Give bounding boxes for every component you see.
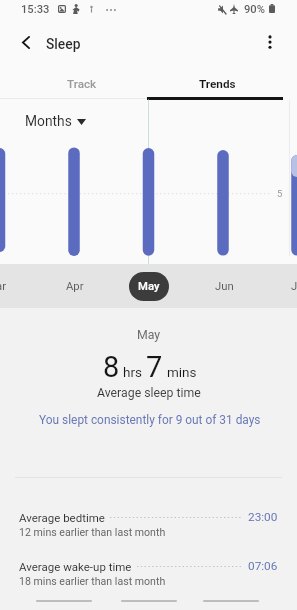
staticText: 7: [146, 350, 163, 384]
staticText: ar: [0, 280, 6, 293]
staticText: Average wake-up time: [19, 560, 132, 573]
staticText: Average sleep time: [97, 386, 201, 400]
staticText: mins: [167, 364, 197, 380]
staticText: 90%: [244, 3, 265, 16]
staticText: 07:06: [248, 559, 278, 573]
button[interactable]: Trends: [148, 63, 283, 96]
staticText: hrs: [123, 364, 142, 380]
staticText: Average bedtime: [19, 511, 105, 524]
staticText: You slept consistently for 9 out of 31 d…: [39, 413, 261, 427]
staticText: 23:00: [248, 510, 278, 524]
staticText: Apr: [66, 280, 84, 293]
button[interactable]: Months: [19, 109, 92, 133]
staticText: 12 mins earlier than last month: [19, 526, 166, 538]
button[interactable]: Navigate up: [4, 21, 48, 63]
staticText: Trends: [199, 77, 236, 91]
button[interactable]: Average wake-up time: [0, 559, 297, 587]
staticText: May: [137, 328, 161, 342]
button[interactable]: Average bedtime: [0, 510, 297, 538]
staticText: 15:33: [21, 3, 50, 16]
staticText: Track: [67, 77, 97, 91]
staticText: Sleep: [46, 36, 81, 52]
staticText: 8: [103, 350, 120, 384]
button[interactable]: May: [129, 272, 169, 301]
staticText: Months: [25, 113, 72, 129]
button[interactable]: Track: [14, 63, 148, 96]
staticText: 18 mins earlier than last month: [19, 575, 166, 587]
staticText: 5: [277, 188, 283, 199]
staticText: J: [291, 280, 297, 293]
staticText: May: [138, 280, 160, 293]
button[interactable]: More options: [248, 21, 292, 63]
staticText: Jun: [215, 280, 234, 293]
